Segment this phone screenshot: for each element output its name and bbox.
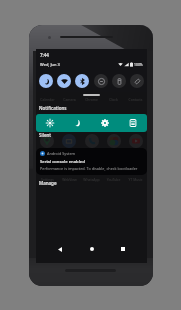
button[interactable]: Brightness bbox=[36, 114, 63, 132]
staticText: Manage bbox=[39, 180, 57, 186]
staticText: WhatsApp bbox=[81, 177, 102, 182]
staticText: Clock bbox=[103, 97, 124, 102]
staticText: YouTube bbox=[103, 177, 124, 182]
staticText: Performance is impacted. To disable, che… bbox=[40, 166, 138, 171]
staticText: 100% bbox=[134, 62, 143, 67]
button[interactable]: Home bbox=[85, 242, 99, 256]
button[interactable]: Flashlight bbox=[112, 74, 126, 88]
button[interactable]: Auto rotate bbox=[130, 74, 144, 88]
staticText: Contacts bbox=[125, 97, 146, 102]
staticText: WebView bbox=[59, 177, 80, 182]
button[interactable]: Wi-Fi bbox=[57, 74, 71, 88]
staticText: Notifications bbox=[39, 105, 67, 111]
button[interactable]: Do not disturb bbox=[39, 74, 53, 88]
button[interactable]: Dark theme bbox=[63, 114, 91, 132]
staticText: Camera bbox=[59, 97, 80, 102]
staticText: Wed, Jun 3 bbox=[40, 62, 60, 67]
staticText: YT Music bbox=[125, 177, 146, 182]
staticText: Calendar bbox=[37, 97, 58, 102]
button[interactable]: Bluetooth bbox=[75, 74, 89, 88]
button[interactable]: Android System bbox=[36, 148, 147, 175]
staticText: 7:44 bbox=[40, 52, 49, 58]
staticText: Chrome bbox=[81, 97, 102, 102]
staticText: Settings bbox=[37, 177, 58, 182]
button[interactable]: Settings bbox=[91, 114, 119, 132]
button[interactable]: Recents bbox=[116, 242, 130, 256]
button[interactable]: Manage bbox=[39, 180, 57, 186]
button[interactable]: Back bbox=[53, 242, 67, 256]
button[interactable]: Airplane mode bbox=[94, 74, 108, 88]
staticText: Android System bbox=[47, 151, 76, 156]
staticText: Serial console enabled bbox=[40, 159, 85, 165]
button[interactable]: Apps bbox=[119, 114, 147, 132]
staticText: Silent bbox=[39, 132, 52, 138]
